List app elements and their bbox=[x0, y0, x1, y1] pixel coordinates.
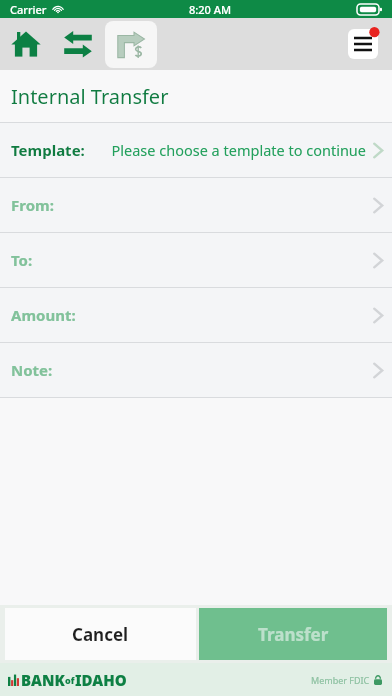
staticText: To: bbox=[11, 250, 33, 270]
button[interactable]: Cancel bbox=[5, 608, 196, 660]
staticText: Template: bbox=[11, 140, 85, 160]
button[interactable]: Amount: bbox=[0, 288, 392, 342]
staticText: Note: bbox=[11, 360, 53, 380]
staticText: Carrier bbox=[10, 2, 47, 17]
button[interactable]: Note: bbox=[0, 343, 392, 397]
staticText: Member FDIC bbox=[311, 674, 370, 686]
staticText: Amount: bbox=[11, 305, 76, 325]
staticText: BANK bbox=[21, 670, 65, 690]
staticText: 8:20 AM bbox=[189, 2, 232, 17]
button[interactable]: Transfer bbox=[199, 608, 387, 660]
staticText: of bbox=[65, 674, 75, 686]
staticText: From: bbox=[11, 195, 54, 215]
staticText: Please choose a template to continue bbox=[111, 140, 366, 160]
button[interactable]: Internal Transfer bbox=[105, 21, 157, 68]
button[interactable]: Template: bbox=[0, 123, 392, 177]
staticText: IDAHO bbox=[75, 670, 127, 690]
button[interactable]: Transfers bbox=[52, 18, 104, 70]
button[interactable]: To: bbox=[0, 233, 392, 287]
button[interactable]: Home bbox=[0, 18, 52, 70]
button[interactable]: From: bbox=[0, 178, 392, 232]
staticText: Transfer bbox=[258, 623, 329, 646]
staticText: Cancel bbox=[72, 623, 129, 646]
staticText: Internal Transfer bbox=[11, 83, 169, 110]
button[interactable]: Menu bbox=[344, 25, 382, 63]
